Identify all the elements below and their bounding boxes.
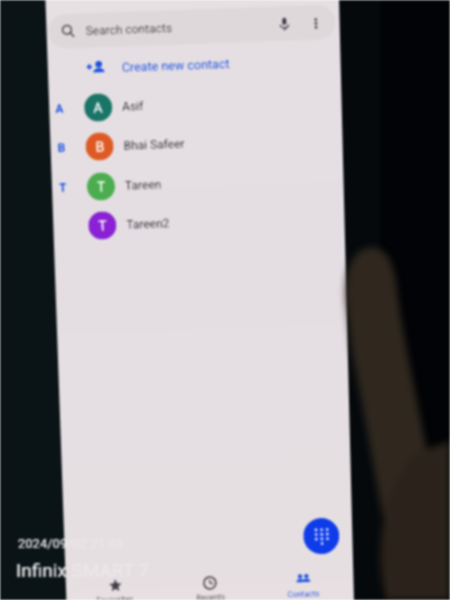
button[interactable]: B [50, 118, 347, 167]
staticText: Asif [122, 99, 144, 114]
staticText: Recents [196, 592, 225, 600]
staticText: Contacts [287, 589, 320, 599]
button[interactable]: A [49, 79, 346, 128]
button[interactable]: Favourites [83, 578, 148, 600]
staticText: Tareen [125, 177, 162, 193]
staticText: Infinix SMART 7 [16, 559, 150, 581]
button[interactable]: Create new contact [47, 42, 344, 86]
staticText: 2024/09/02 21:03 [18, 536, 123, 551]
staticText: A [55, 102, 64, 116]
staticText: Tareen2 [126, 216, 171, 232]
staticText: Favourites [96, 595, 135, 600]
button[interactable]: Recents [178, 575, 243, 600]
staticText: Infinix SMART 7 [16, 559, 150, 581]
button[interactable]: More options [304, 12, 327, 34]
staticText: Search contacts [85, 21, 173, 38]
staticText: T [98, 217, 108, 234]
staticText: B [57, 141, 66, 155]
button[interactable]: Voice search [273, 13, 296, 35]
staticText: T [59, 181, 67, 195]
staticText: A [93, 99, 103, 116]
button[interactable]: Dialpad [303, 517, 340, 555]
staticText: T [97, 178, 106, 195]
button[interactable]: Search contacts [48, 4, 336, 49]
staticText: Create new contact [122, 56, 230, 75]
staticText: Bhai Safeer [123, 137, 185, 153]
button[interactable]: T [51, 158, 348, 207]
button[interactable]: Contacts [271, 571, 336, 600]
staticText: 2024/09/02 21:03 [18, 536, 123, 551]
staticText: B [95, 138, 105, 155]
button[interactable]: T [53, 197, 350, 246]
